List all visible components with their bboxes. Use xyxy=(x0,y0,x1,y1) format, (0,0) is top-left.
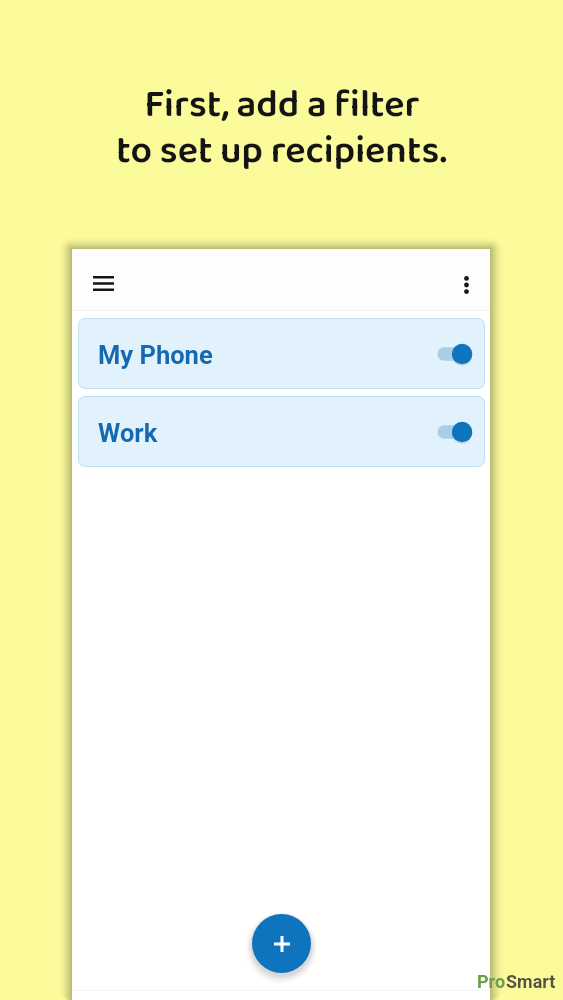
button[interactable]: Open navigation menu xyxy=(80,260,126,306)
staticText: Pro xyxy=(477,971,506,992)
staticText: to set up recipients. xyxy=(116,121,447,182)
button[interactable]: Add filter xyxy=(252,914,311,973)
button[interactable]: Toggle Work xyxy=(428,417,472,447)
button[interactable]: Work xyxy=(78,396,485,467)
button[interactable]: Toggle My Phone xyxy=(428,339,472,369)
staticText: My Phone xyxy=(98,340,213,370)
staticText: First, add a filter xyxy=(144,75,420,136)
button[interactable]: More options xyxy=(443,262,489,308)
staticText: Smart xyxy=(506,971,556,992)
staticText: Work xyxy=(98,418,158,448)
button[interactable]: My Phone xyxy=(78,318,485,389)
